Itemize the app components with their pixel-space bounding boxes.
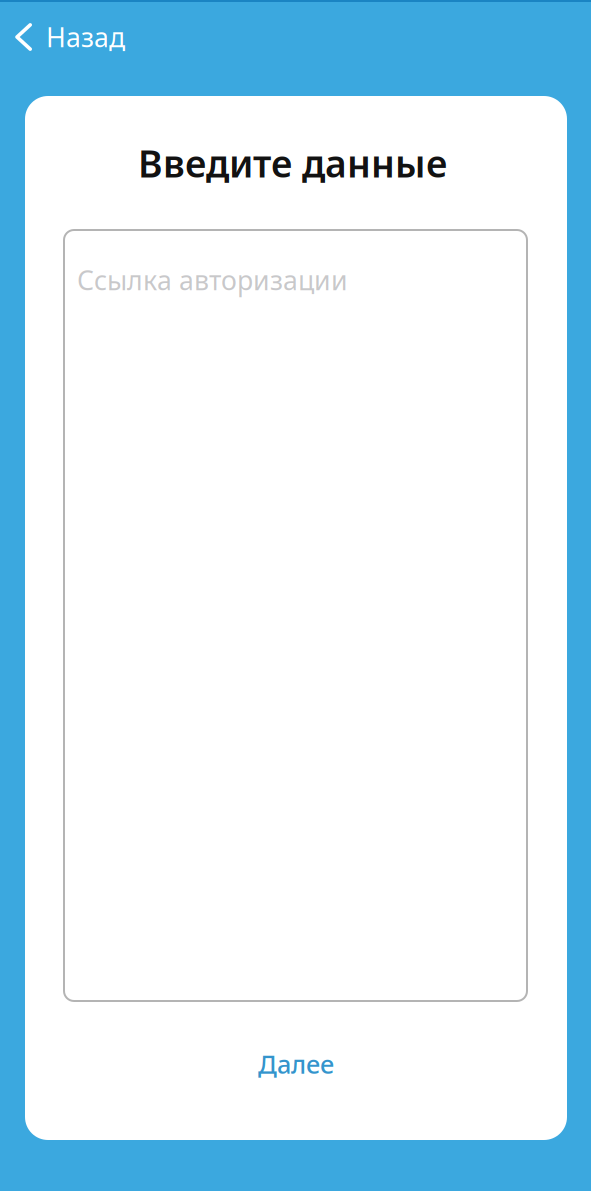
button[interactable]: Далее <box>186 1036 406 1092</box>
staticText: Далее <box>258 1047 334 1081</box>
button[interactable]: Ссылка авторизации <box>64 230 527 1001</box>
button[interactable]: Назад <box>8 11 140 63</box>
staticText: Введите данные <box>138 138 447 188</box>
staticText: Ссылка авторизации <box>77 262 348 298</box>
staticText: Назад <box>46 19 125 55</box>
